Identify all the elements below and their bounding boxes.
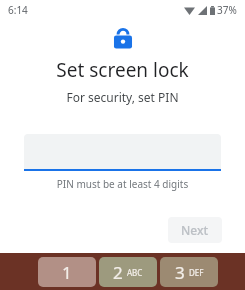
- staticText: ABC: [127, 267, 143, 278]
- staticText: 37%: [217, 3, 237, 17]
- button[interactable]: 2: [99, 257, 157, 287]
- button[interactable]: Next: [168, 217, 222, 243]
- staticText: PIN must be at least 4 digits: [0, 177, 245, 191]
- other: Screen lock: [112, 26, 134, 50]
- staticText: 3: [175, 261, 185, 284]
- staticText: Next: [181, 222, 209, 238]
- staticText: 6:14: [8, 3, 28, 17]
- staticText: 2: [113, 261, 123, 284]
- button[interactable]: 3: [160, 257, 218, 287]
- staticText: 1: [62, 261, 72, 284]
- staticText: For security, set PIN: [0, 89, 245, 105]
- staticText: DEF: [189, 267, 204, 278]
- staticText: Set screen lock: [0, 57, 245, 83]
- button[interactable]: 1: [38, 257, 96, 287]
